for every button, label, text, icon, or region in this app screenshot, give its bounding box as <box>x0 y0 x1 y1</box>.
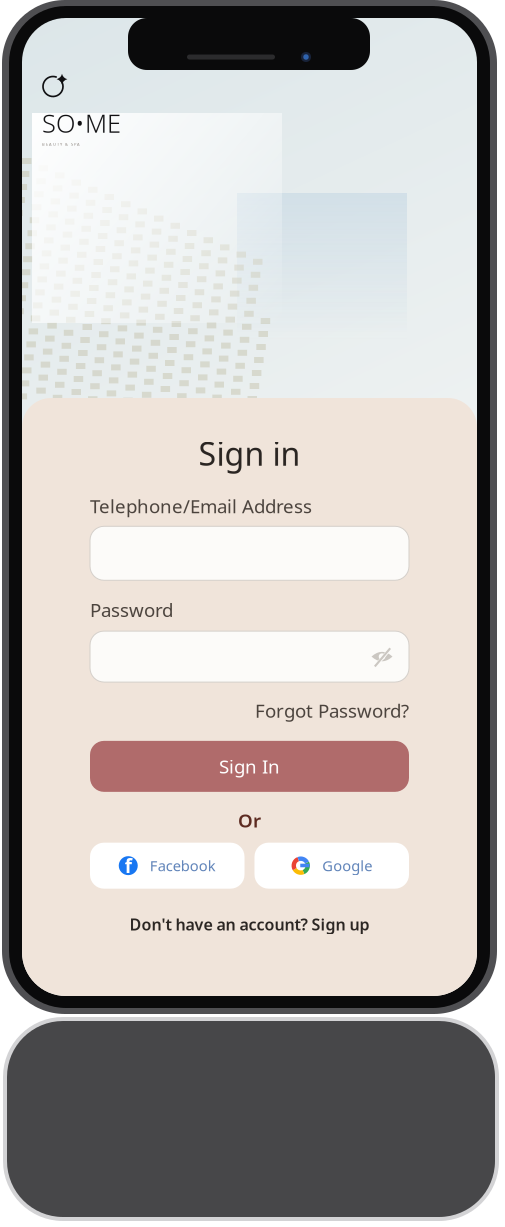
staticText: Sign In <box>219 754 280 779</box>
staticText: Facebook <box>150 856 216 875</box>
staticText: Password <box>90 597 173 622</box>
staticText: SO•ME <box>42 106 121 140</box>
button[interactable]: Sign In <box>90 741 409 792</box>
staticText: B E A U T Y & S P A <box>42 142 80 147</box>
staticText: Or <box>238 808 261 833</box>
staticText: Don't have an account? Sign up <box>129 914 369 935</box>
staticText: Google <box>322 856 372 875</box>
staticText: Forgot Password? <box>255 698 409 723</box>
button[interactable]: Google <box>254 843 409 889</box>
button[interactable]: Forgot Password? <box>255 698 409 723</box>
button[interactable]: Don't have an account? Sign up <box>90 914 409 935</box>
button[interactable]: f <box>90 843 244 889</box>
staticText: f <box>125 853 132 878</box>
staticText: Telephone/Email Address <box>90 493 312 518</box>
staticText: Sign in <box>198 432 300 474</box>
